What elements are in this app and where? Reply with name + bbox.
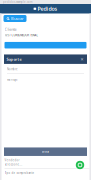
staticText: Seleccione... <box>4 163 22 166</box>
staticText: Enviar <box>42 150 49 153</box>
staticText: Nombre <box>7 67 18 71</box>
staticText: pedidos.example.com <box>3 0 32 4</box>
staticText: Cliente <box>4 26 16 32</box>
staticText: Soporte <box>6 56 21 62</box>
staticText: (05) CONSUMIDOR FINAL <box>4 33 37 37</box>
button[interactable]: Cerrar <box>79 56 84 62</box>
staticText: × <box>80 56 83 63</box>
button[interactable]: Enviar <box>4 147 87 156</box>
button[interactable]: WhatsApp <box>75 160 85 170</box>
staticText: Pedidos <box>37 5 57 12</box>
staticText: Mensaje <box>7 78 18 81</box>
button[interactable]: Buscar <box>3 15 26 22</box>
staticText: Vendedor <box>4 158 19 162</box>
staticText: Buscar <box>11 16 24 21</box>
staticText: Tipo de comprobante <box>4 171 34 175</box>
